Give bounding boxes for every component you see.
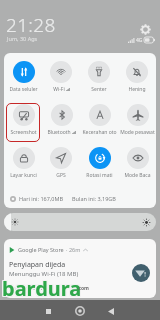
- button[interactable]: Bluetooth: [42, 101, 80, 144]
- button[interactable]: Back: [103, 303, 119, 319]
- staticText: bardura: [1, 274, 81, 301]
- staticText: bardura: [3, 275, 83, 302]
- staticText: · 26m: [66, 246, 81, 253]
- button[interactable]: Home: [72, 303, 88, 319]
- staticText: Bluetooth: [47, 129, 71, 136]
- staticText: Kecerahan oto: [82, 129, 117, 136]
- staticText: .com: [77, 285, 89, 292]
- staticText: Bulan ini: 3,19GB: [72, 195, 116, 202]
- staticText: 21:28: [6, 12, 56, 38]
- button[interactable]: Layar kunci: [4, 144, 42, 187]
- button[interactable]: Senter: [80, 58, 118, 101]
- staticText: Google Play Store: [18, 246, 64, 253]
- staticText: Rotasi mati: [86, 172, 113, 179]
- button[interactable]: Kecerahan oto: [80, 101, 118, 144]
- button[interactable]: Recents: [40, 303, 56, 319]
- staticText: bardura: [2, 276, 82, 303]
- staticText: Mode Baca: [124, 172, 151, 179]
- button[interactable]: Mode Baca: [118, 144, 156, 187]
- staticText: bardura: [2, 275, 82, 302]
- button[interactable]: GPS: [42, 144, 80, 187]
- staticText: bardura: [3, 276, 83, 303]
- staticText: Menunggu Wi-Fi (18 MB): [9, 270, 79, 278]
- staticText: Layar kunci: [10, 172, 37, 179]
- staticText: 4G: [136, 37, 143, 44]
- staticText: Mode pesawat: [120, 129, 155, 136]
- button[interactable]: Hening: [118, 58, 156, 101]
- staticText: bardura: [1, 276, 81, 303]
- staticText: Senter: [91, 86, 107, 93]
- staticText: bardura: [1, 275, 81, 302]
- staticText: GPS: [56, 172, 66, 179]
- button[interactable]: Settings: [140, 24, 151, 35]
- staticText: Jum, 30 Ags: [7, 35, 38, 42]
- staticText: Hening: [128, 86, 146, 93]
- staticText: Data seluler: [9, 86, 38, 93]
- staticText: Wi-Fi: [53, 86, 65, 93]
- button[interactable]: Google Play Store: [4, 239, 156, 298]
- staticText: bardura: [2, 274, 82, 301]
- button[interactable]: Wi-Fi: [42, 58, 80, 101]
- button[interactable]: Brightness: [4, 213, 156, 231]
- staticText: Screenshot: [10, 129, 37, 136]
- button[interactable]: Mode pesawat: [118, 101, 156, 144]
- button[interactable]: Data seluler: [4, 58, 42, 101]
- staticText: Hari ini: 167,0MB: [19, 195, 64, 202]
- button[interactable]: Rotasi mati: [80, 144, 118, 187]
- staticText: Gunakan data: [9, 284, 50, 292]
- button[interactable]: Screenshot: [6, 103, 40, 142]
- staticText: Penyiapan dijeda: [9, 260, 66, 270]
- staticText: bardura: [3, 274, 83, 301]
